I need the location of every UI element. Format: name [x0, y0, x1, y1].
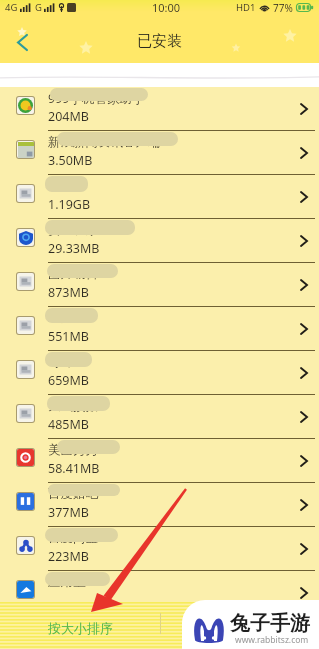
button[interactable]: 地图 — [0, 307, 319, 351]
staticText: 77% — [273, 1, 293, 15]
staticText: 377MB — [48, 504, 89, 521]
button[interactable]: 图片编辑 — [0, 263, 319, 307]
button[interactable] — [161, 602, 319, 649]
staticText: 应用宝 — [48, 574, 86, 590]
button[interactable]: 按大小排序 — [0, 602, 161, 649]
staticText: 3.50MB — [48, 152, 93, 169]
staticText: 新浪新闻资讯客户端 — [48, 134, 161, 150]
button[interactable]: 百度贴吧 — [0, 483, 319, 527]
staticText: 按大小排序 — [48, 620, 113, 636]
staticText: 551MB — [48, 328, 89, 345]
staticText: 图片编辑 — [48, 266, 98, 282]
staticText: 223MB — [48, 548, 89, 565]
staticText: 地图 — [48, 310, 73, 326]
staticText: 204MB — [48, 108, 89, 125]
staticText: 美图秀秀 — [48, 442, 98, 458]
staticText: 999手机管家助手 — [48, 90, 145, 107]
button[interactable]: 应用宝 — [0, 571, 319, 615]
staticText: 兔子手游 — [230, 611, 310, 636]
staticText: 485MB — [48, 416, 89, 433]
staticText: 4G — [5, 1, 18, 14]
button[interactable]: 新浪新闻资讯客户端 — [0, 131, 319, 175]
staticText: 10:00 — [152, 0, 181, 15]
button[interactable]: 百度网盘 — [0, 527, 319, 571]
staticText: 安全管家 — [48, 222, 98, 238]
button[interactable]: 相机 — [0, 175, 319, 219]
staticText: 相机 — [48, 178, 73, 194]
staticText: 百度网盘 — [48, 530, 98, 546]
staticText: 659MB — [48, 372, 89, 389]
staticText: HD1 — [236, 1, 256, 14]
staticText: 天气预报 — [48, 398, 98, 414]
staticText: 已安装 — [137, 32, 182, 51]
button[interactable]: 安全管家 — [0, 219, 319, 263]
button[interactable]: 美图秀秀 — [0, 439, 319, 483]
staticText: 58.41MB — [48, 460, 100, 477]
staticText: 1.19GB — [48, 196, 91, 213]
staticText: 873MB — [48, 284, 89, 301]
staticText: 29.33MB — [48, 240, 100, 257]
button[interactable]: Back — [0, 22, 44, 63]
staticText: G — [35, 1, 42, 14]
staticText: www.rabbitsz.com — [235, 634, 309, 646]
staticText: 百度贴吧 — [48, 486, 98, 502]
button[interactable]: 天气预报 — [0, 395, 319, 439]
staticText: 时钟 — [48, 354, 73, 370]
button[interactable]: 时钟 — [0, 351, 319, 395]
button[interactable]: 999手机管家助手 — [0, 87, 319, 131]
